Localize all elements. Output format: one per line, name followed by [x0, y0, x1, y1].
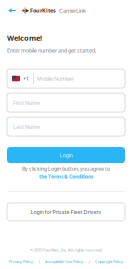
staticText: | [38, 259, 40, 264]
button[interactable]: Back [5, 4, 19, 17]
staticText: Welcome! [7, 33, 42, 43]
staticText: Copyright Policy [95, 259, 123, 264]
button[interactable]: Privacy Policy [9, 259, 33, 264]
staticText: FourKites [30, 7, 56, 14]
button[interactable]: Login for Private Fleet Drivers [7, 203, 125, 221]
staticText: Mobile Number [37, 75, 74, 82]
staticText: Last Name [13, 123, 40, 130]
staticText: the Terms & Conditions [39, 173, 93, 180]
button[interactable]: Login [7, 147, 125, 163]
staticText: Privacy Policy [9, 259, 33, 264]
button[interactable]: Acceptable Use Policy [45, 259, 83, 264]
staticText: First Name [13, 99, 40, 106]
staticText: © 2019 FourKites, Inc. All rights reserv… [30, 247, 102, 253]
staticText: CarrierLink [59, 7, 86, 14]
staticText: Enter mobile number and get started. [7, 47, 96, 54]
staticText: Acceptable Use Policy [45, 259, 83, 264]
staticText: +1 [23, 75, 29, 82]
staticText: By clicking Login button, you agree to [22, 165, 110, 172]
staticText: | [88, 259, 90, 264]
button[interactable]: Copyright Policy [95, 259, 123, 264]
staticText: Login for Private Fleet Drivers [30, 208, 101, 215]
staticText: Login [59, 151, 72, 159]
